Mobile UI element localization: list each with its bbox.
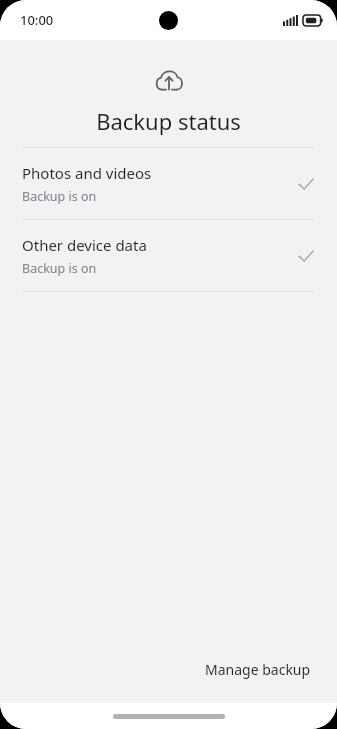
button[interactable]: Other device data [0,220,337,291]
staticText: Backup is on [22,188,97,205]
other: Backup enabled [297,247,315,265]
staticText: Manage backup [205,660,311,679]
staticText: Backup status [0,106,337,136]
staticText: 10:00 [20,11,54,29]
button[interactable]: Manage backup [201,654,315,685]
staticText: Photos and videos [22,163,152,183]
button[interactable]: Photos and videos [0,148,337,219]
other: Backup enabled [297,175,315,193]
staticText: Other device data [22,235,147,255]
staticText: Backup is on [22,260,97,277]
